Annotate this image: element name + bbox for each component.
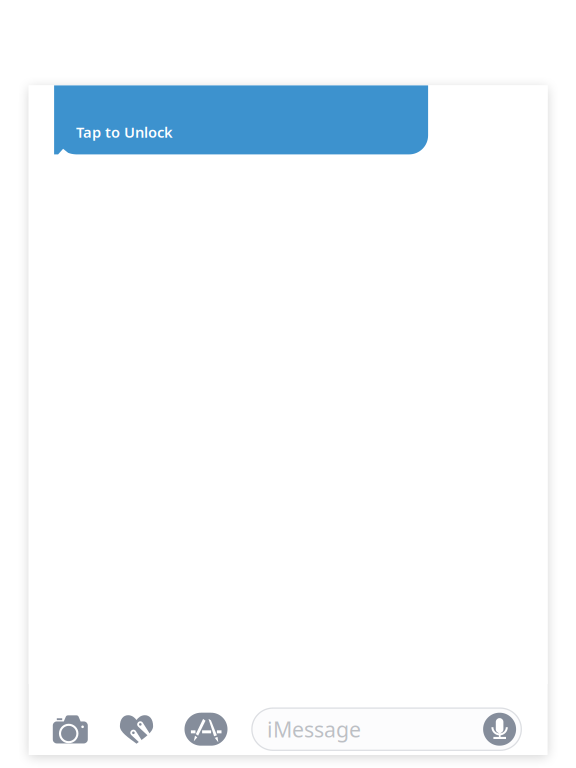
- staticText: Tap to Unlock: [76, 122, 173, 142]
- button[interactable]: Digital Touch: [119, 714, 153, 744]
- button[interactable]: Tap to Unlock: [29, 85, 403, 185]
- button[interactable]: Message field: [252, 708, 521, 750]
- button[interactable]: Take photo: [53, 715, 88, 743]
- staticText: iMessage: [267, 715, 361, 743]
- button[interactable]: iMessage apps: [184, 713, 227, 746]
